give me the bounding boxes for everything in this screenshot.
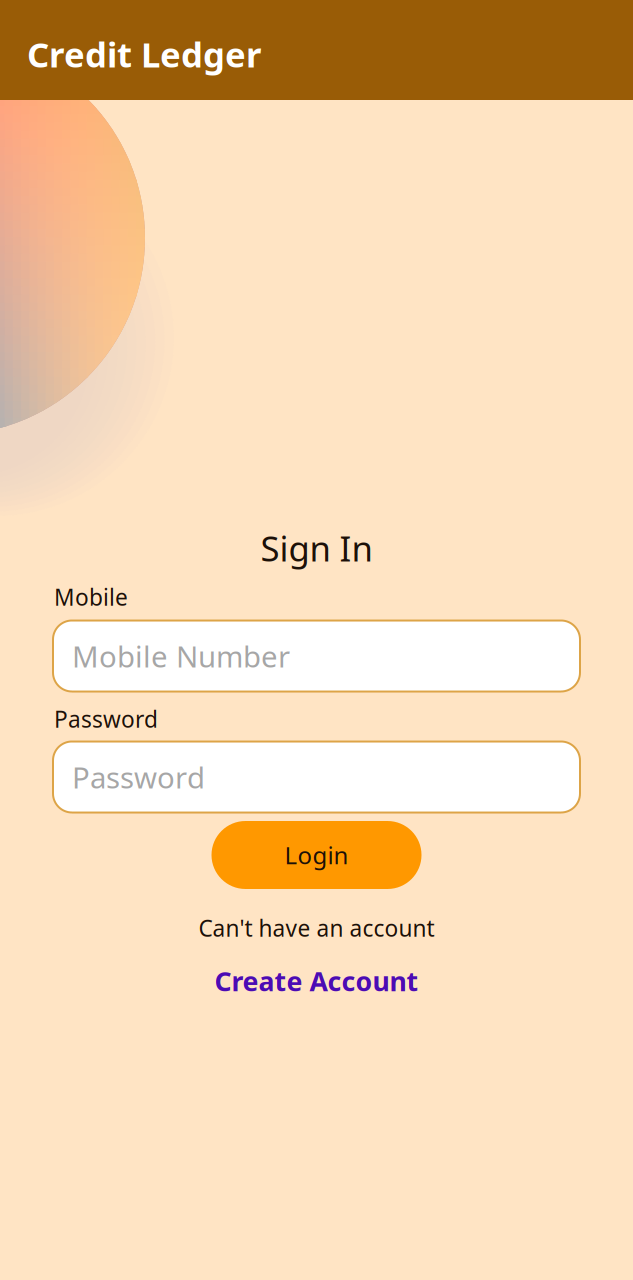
staticText: Sign In — [260, 525, 372, 571]
staticText: Password — [54, 704, 158, 734]
staticText: Password — [72, 757, 205, 796]
button[interactable]: Login — [211, 821, 421, 889]
button[interactable]: Mobile Number — [53, 620, 580, 691]
button[interactable]: Create Account — [214, 963, 418, 999]
staticText: Credit Ledger — [27, 31, 261, 77]
button[interactable]: Password — [53, 741, 580, 812]
staticText: Mobile Number — [72, 636, 290, 675]
staticText: Can't have an account — [198, 913, 434, 943]
staticText: Create Account — [214, 963, 418, 999]
staticText: Mobile — [54, 582, 128, 612]
staticText: Login — [284, 839, 348, 871]
